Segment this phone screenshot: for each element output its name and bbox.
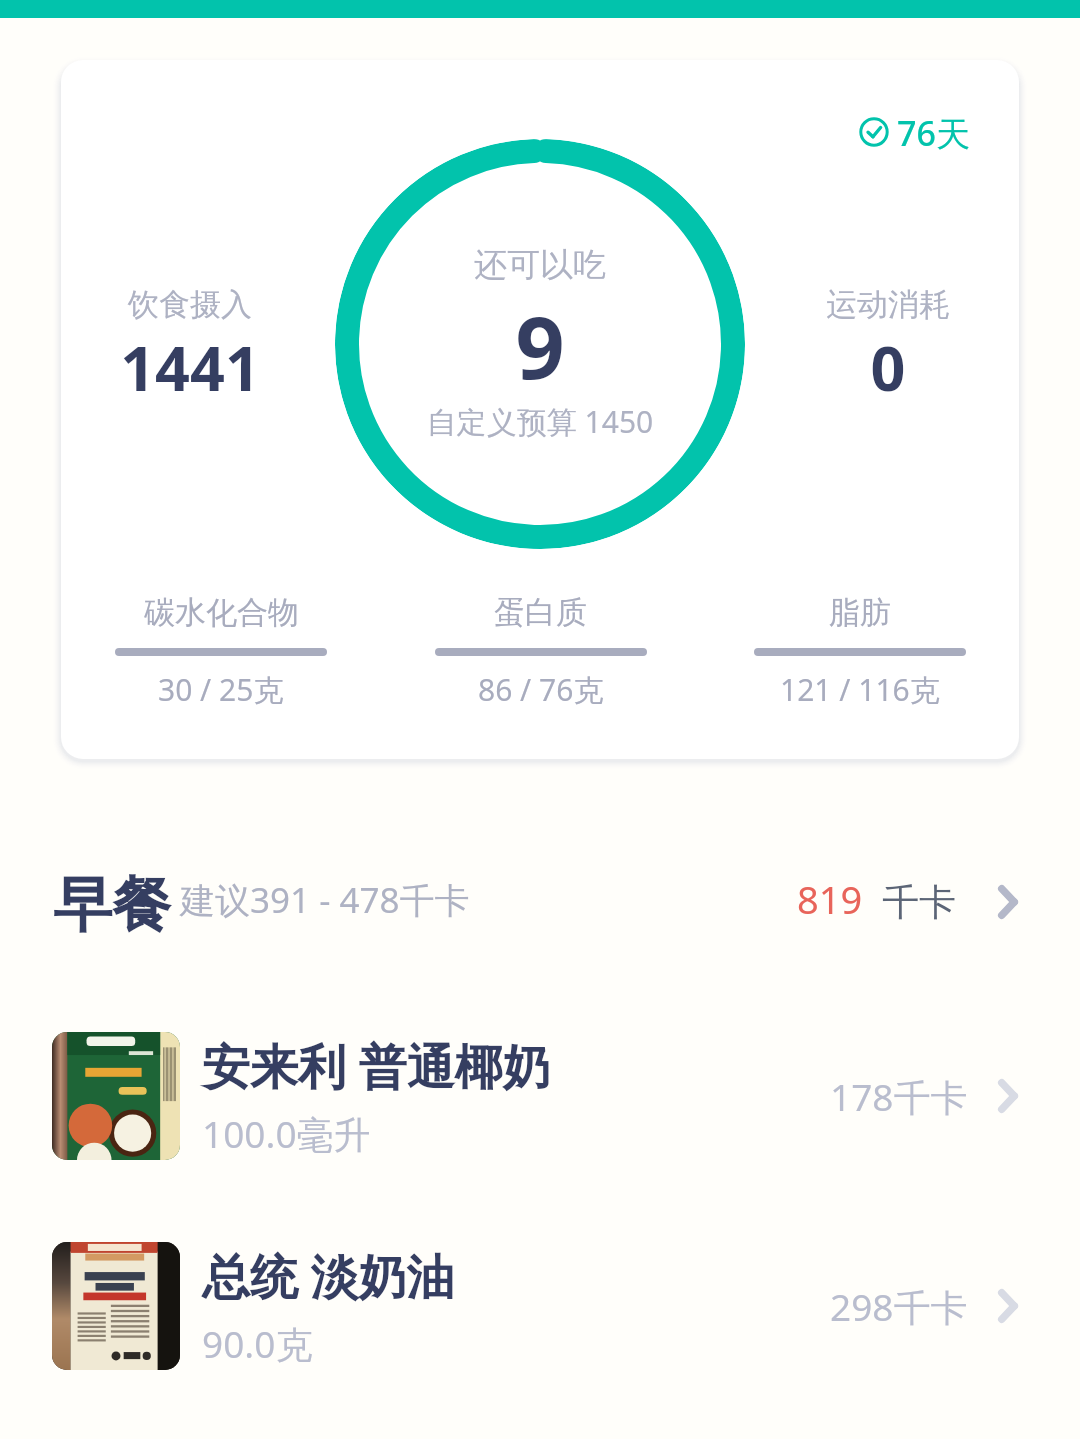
staticText: 自定义预算 1450	[61, 401, 1019, 442]
button[interactable]: 运动消耗	[728, 285, 1019, 405]
staticText: 9	[61, 287, 1019, 404]
staticText: 脂肪	[829, 593, 891, 632]
staticText: 饮食摄入	[61, 285, 350, 324]
button[interactable]: 总统 淡奶油	[0, 1242, 1080, 1370]
button[interactable]: 蛋白质	[381, 593, 700, 710]
staticText: 碳水化合物	[144, 593, 299, 632]
staticText: 819	[797, 873, 863, 925]
button[interactable]: 安来利 普通椰奶	[0, 1032, 1080, 1160]
staticText: 86 / 76克	[478, 669, 604, 710]
staticText: 安来利 普通椰奶	[202, 1033, 551, 1099]
button[interactable]: 饮食摄入	[61, 285, 350, 405]
staticText: 100.0毫升	[202, 1108, 371, 1159]
staticText: 还可以吃	[61, 244, 1019, 286]
other: 查看详情	[998, 885, 1018, 919]
staticText: 运动消耗	[728, 285, 1019, 324]
staticText: 蛋白质	[494, 593, 587, 632]
staticText: 30 / 25克	[158, 669, 284, 710]
staticText: 总统 淡奶油	[202, 1243, 455, 1309]
staticText: 298千卡	[830, 1281, 968, 1332]
staticText: 早餐	[53, 868, 171, 942]
staticText: 178千卡	[830, 1071, 968, 1122]
button[interactable]: 剩余热量预算	[335, 139, 745, 549]
other: 查看详情	[998, 1289, 1018, 1323]
staticText: 建议391 - 478千卡	[180, 876, 470, 924]
button[interactable]: 碳水化合物	[61, 593, 381, 710]
staticText: 0	[728, 326, 1019, 409]
button[interactable]: 早餐	[0, 852, 1080, 952]
button[interactable]: 脂肪	[700, 593, 1019, 710]
staticText: 76天	[897, 110, 970, 154]
other: 连续打卡天数	[859, 117, 889, 147]
staticText: 1441	[61, 326, 350, 409]
staticText: 90.0克	[202, 1318, 313, 1369]
staticText: 千卡	[882, 879, 956, 926]
staticText: 121 / 116克	[780, 669, 940, 710]
other: 查看详情	[998, 1079, 1018, 1113]
button[interactable]: 连续打卡天数	[859, 110, 970, 154]
